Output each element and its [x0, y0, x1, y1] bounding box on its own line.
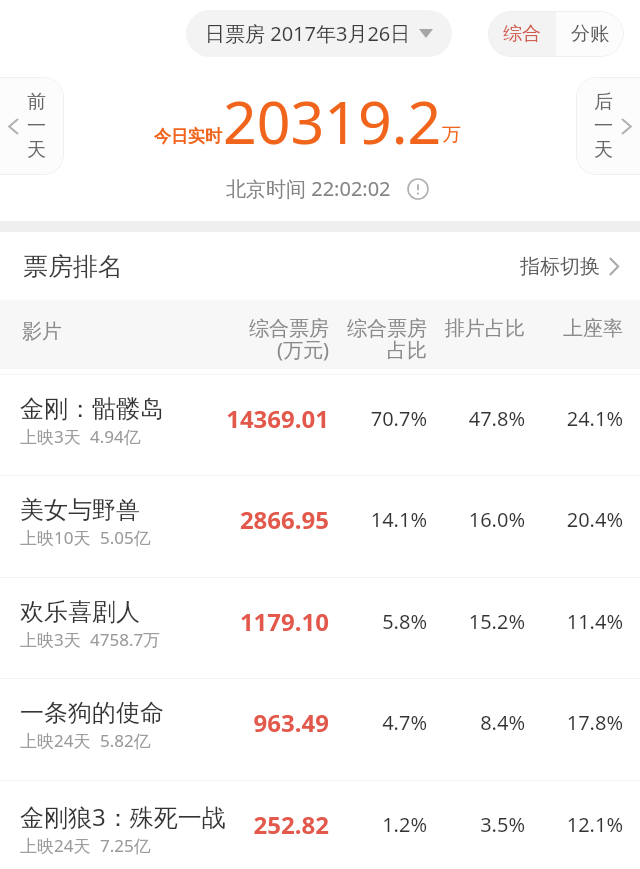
staticText: 24.1% [513, 405, 623, 432]
staticText: 一 [594, 114, 613, 138]
staticText: 70.7% [317, 405, 427, 432]
staticText: 4.94亿 [90, 425, 141, 448]
button[interactable]: 金刚狼3：殊死一战 [0, 780, 640, 869]
staticText: 4758.7万 [90, 628, 161, 651]
staticText: 上映10天 [20, 526, 91, 549]
staticText: 综合 [503, 22, 541, 46]
staticText: 上映24天 [20, 834, 91, 857]
staticText: 美女与野兽 [20, 495, 140, 525]
staticText: 票房排名 [23, 251, 123, 282]
staticText: 一条狗的使命 [20, 698, 164, 728]
staticText: 排片占比 [415, 316, 525, 341]
staticText: 14369.01 [219, 402, 329, 435]
button[interactable]: 后一天 [576, 77, 640, 175]
staticText: 上映3天 [20, 628, 81, 651]
staticText: 分账 [571, 22, 609, 46]
staticText: 17.8% [513, 709, 623, 736]
button[interactable]: 美女与野兽 [0, 475, 640, 576]
staticText: 7.25亿 [100, 834, 151, 857]
staticText: 252.82 [219, 808, 329, 841]
staticText: 指标切换 [520, 254, 600, 279]
staticText: 上映24天 [20, 729, 91, 752]
button[interactable]: 指标切换 [520, 254, 640, 279]
staticText: 1.2% [317, 811, 427, 838]
staticText: 4.7% [317, 709, 427, 736]
button[interactable]: 前一天 [0, 77, 64, 175]
staticText: 5.8% [317, 608, 427, 635]
staticText: 今日实时 [154, 126, 222, 147]
staticText: 8.4% [415, 709, 525, 736]
staticText: 影片 [22, 319, 62, 344]
button[interactable]: 一条狗的使命 [0, 678, 640, 779]
staticText: 北京时间 22:02:02 [226, 175, 391, 202]
button[interactable]: 欢乐喜剧人 [0, 577, 640, 678]
staticText: 一 [27, 114, 46, 138]
staticText: 14.1% [317, 506, 427, 533]
staticText: 3.5% [415, 811, 525, 838]
staticText: 963.49 [219, 706, 329, 739]
staticText: 16.0% [415, 506, 525, 533]
staticText: 47.8% [415, 405, 525, 432]
staticText: 综合票房 (万元) [219, 316, 329, 363]
staticText: 5.82亿 [100, 729, 151, 752]
staticText: 万 [442, 123, 461, 147]
staticText: 金刚狼3：殊死一战 [20, 800, 226, 833]
staticText: 20319.2 [223, 81, 442, 161]
staticText: 综合票房 占比 [317, 316, 427, 363]
staticText: 5.05亿 [100, 526, 151, 549]
button[interactable]: 综合 [488, 11, 556, 57]
staticText: 日票房 2017年3月26日 [205, 20, 411, 47]
staticText: 2866.95 [219, 503, 329, 536]
staticText: 后 [594, 90, 613, 114]
button[interactable]: 金刚：骷髅岛 [0, 374, 640, 475]
staticText: 20.4% [513, 506, 623, 533]
staticText: 天 [27, 138, 46, 162]
staticText: 11.4% [513, 608, 623, 635]
staticText: 金刚：骷髅岛 [20, 394, 164, 424]
staticText: 上映3天 [20, 425, 81, 448]
staticText: 上座率 [513, 316, 623, 341]
staticText: 12.1% [513, 811, 623, 838]
staticText: 15.2% [415, 608, 525, 635]
staticText: 前 [27, 90, 46, 114]
staticText: 天 [594, 138, 613, 162]
button[interactable]: 日票房 2017年3月26日 [186, 10, 452, 57]
staticText: 欢乐喜剧人 [20, 597, 140, 627]
button[interactable]: 分账 [556, 11, 624, 57]
staticText: 1179.10 [219, 605, 329, 638]
